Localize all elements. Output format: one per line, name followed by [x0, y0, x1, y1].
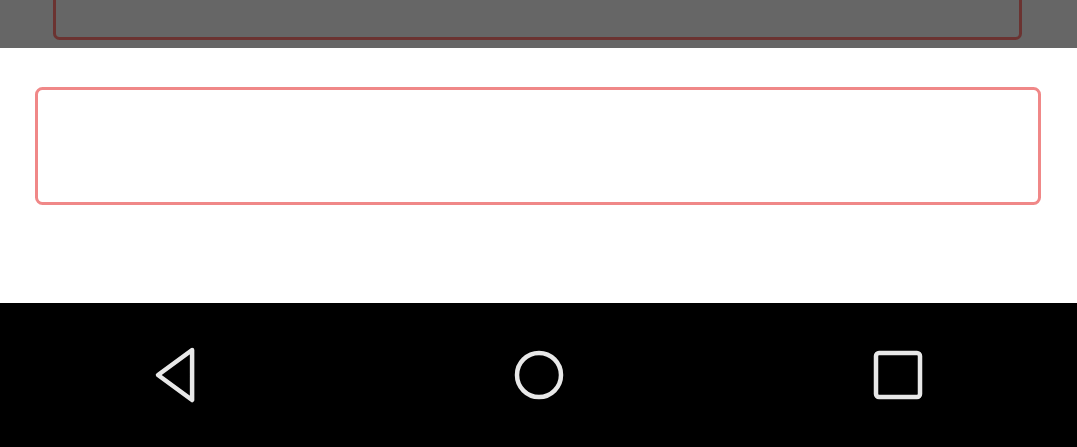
- button[interactable]: Recent apps: [718, 303, 1077, 447]
- button[interactable]: Back: [0, 303, 359, 447]
- button[interactable]: Text field: [0, 0, 1077, 48]
- button[interactable]: Home: [359, 303, 718, 447]
- button[interactable]: Text field: [0, 48, 1077, 303]
